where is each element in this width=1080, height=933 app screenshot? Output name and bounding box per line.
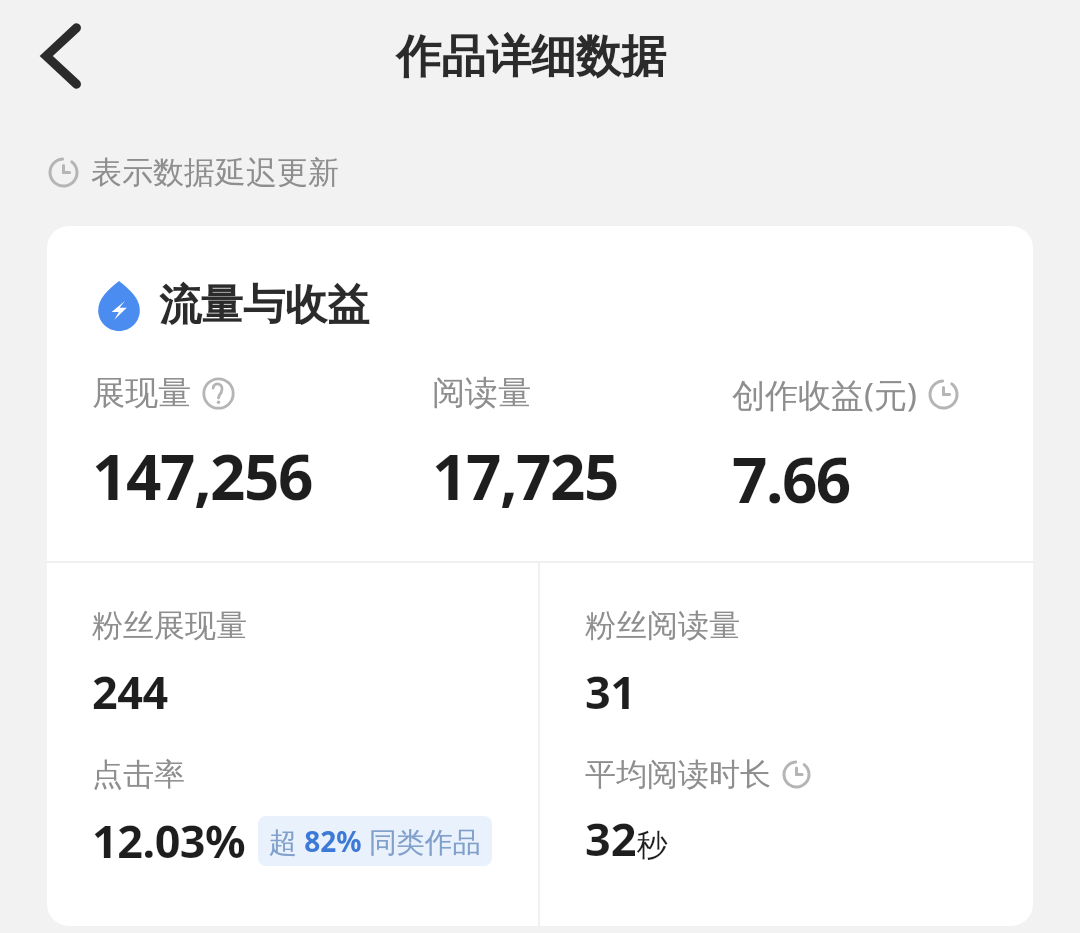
staticText: 展现量 <box>92 372 191 414</box>
button[interactable]: 粉丝阅读量 <box>585 606 740 722</box>
staticText: 244 <box>92 661 168 722</box>
button[interactable]: 阅读量 <box>432 372 618 518</box>
staticText: 表示数据延迟更新 <box>91 153 339 192</box>
staticText: 32秒 <box>585 808 668 869</box>
staticText: 17,725 <box>432 434 618 518</box>
button[interactable]: Back <box>16 14 100 98</box>
staticText: 12.03% <box>92 810 246 871</box>
staticText: 粉丝阅读量 <box>585 606 740 645</box>
staticText: 作品详细数据 <box>396 29 666 86</box>
staticText: 平均阅读时长 <box>585 755 771 794</box>
button[interactable]: 超 82% 同类作品 <box>258 816 492 866</box>
staticText: 创作收益(元) <box>732 372 917 417</box>
staticText: 超 82% 同类作品 <box>269 822 481 860</box>
staticText: 点击率 <box>92 755 185 794</box>
staticText: 粉丝展现量 <box>92 606 247 645</box>
staticText: 流量与收益 <box>159 279 369 332</box>
staticText: 147,256 <box>92 434 312 518</box>
staticText: 31 <box>585 661 636 722</box>
staticText: 阅读量 <box>432 372 531 414</box>
button[interactable]: 粉丝展现量 <box>92 606 247 722</box>
button[interactable]: 展现量 <box>92 372 312 518</box>
staticText: 7.66 <box>732 437 850 521</box>
button[interactable]: 创作收益(元) <box>732 372 960 521</box>
